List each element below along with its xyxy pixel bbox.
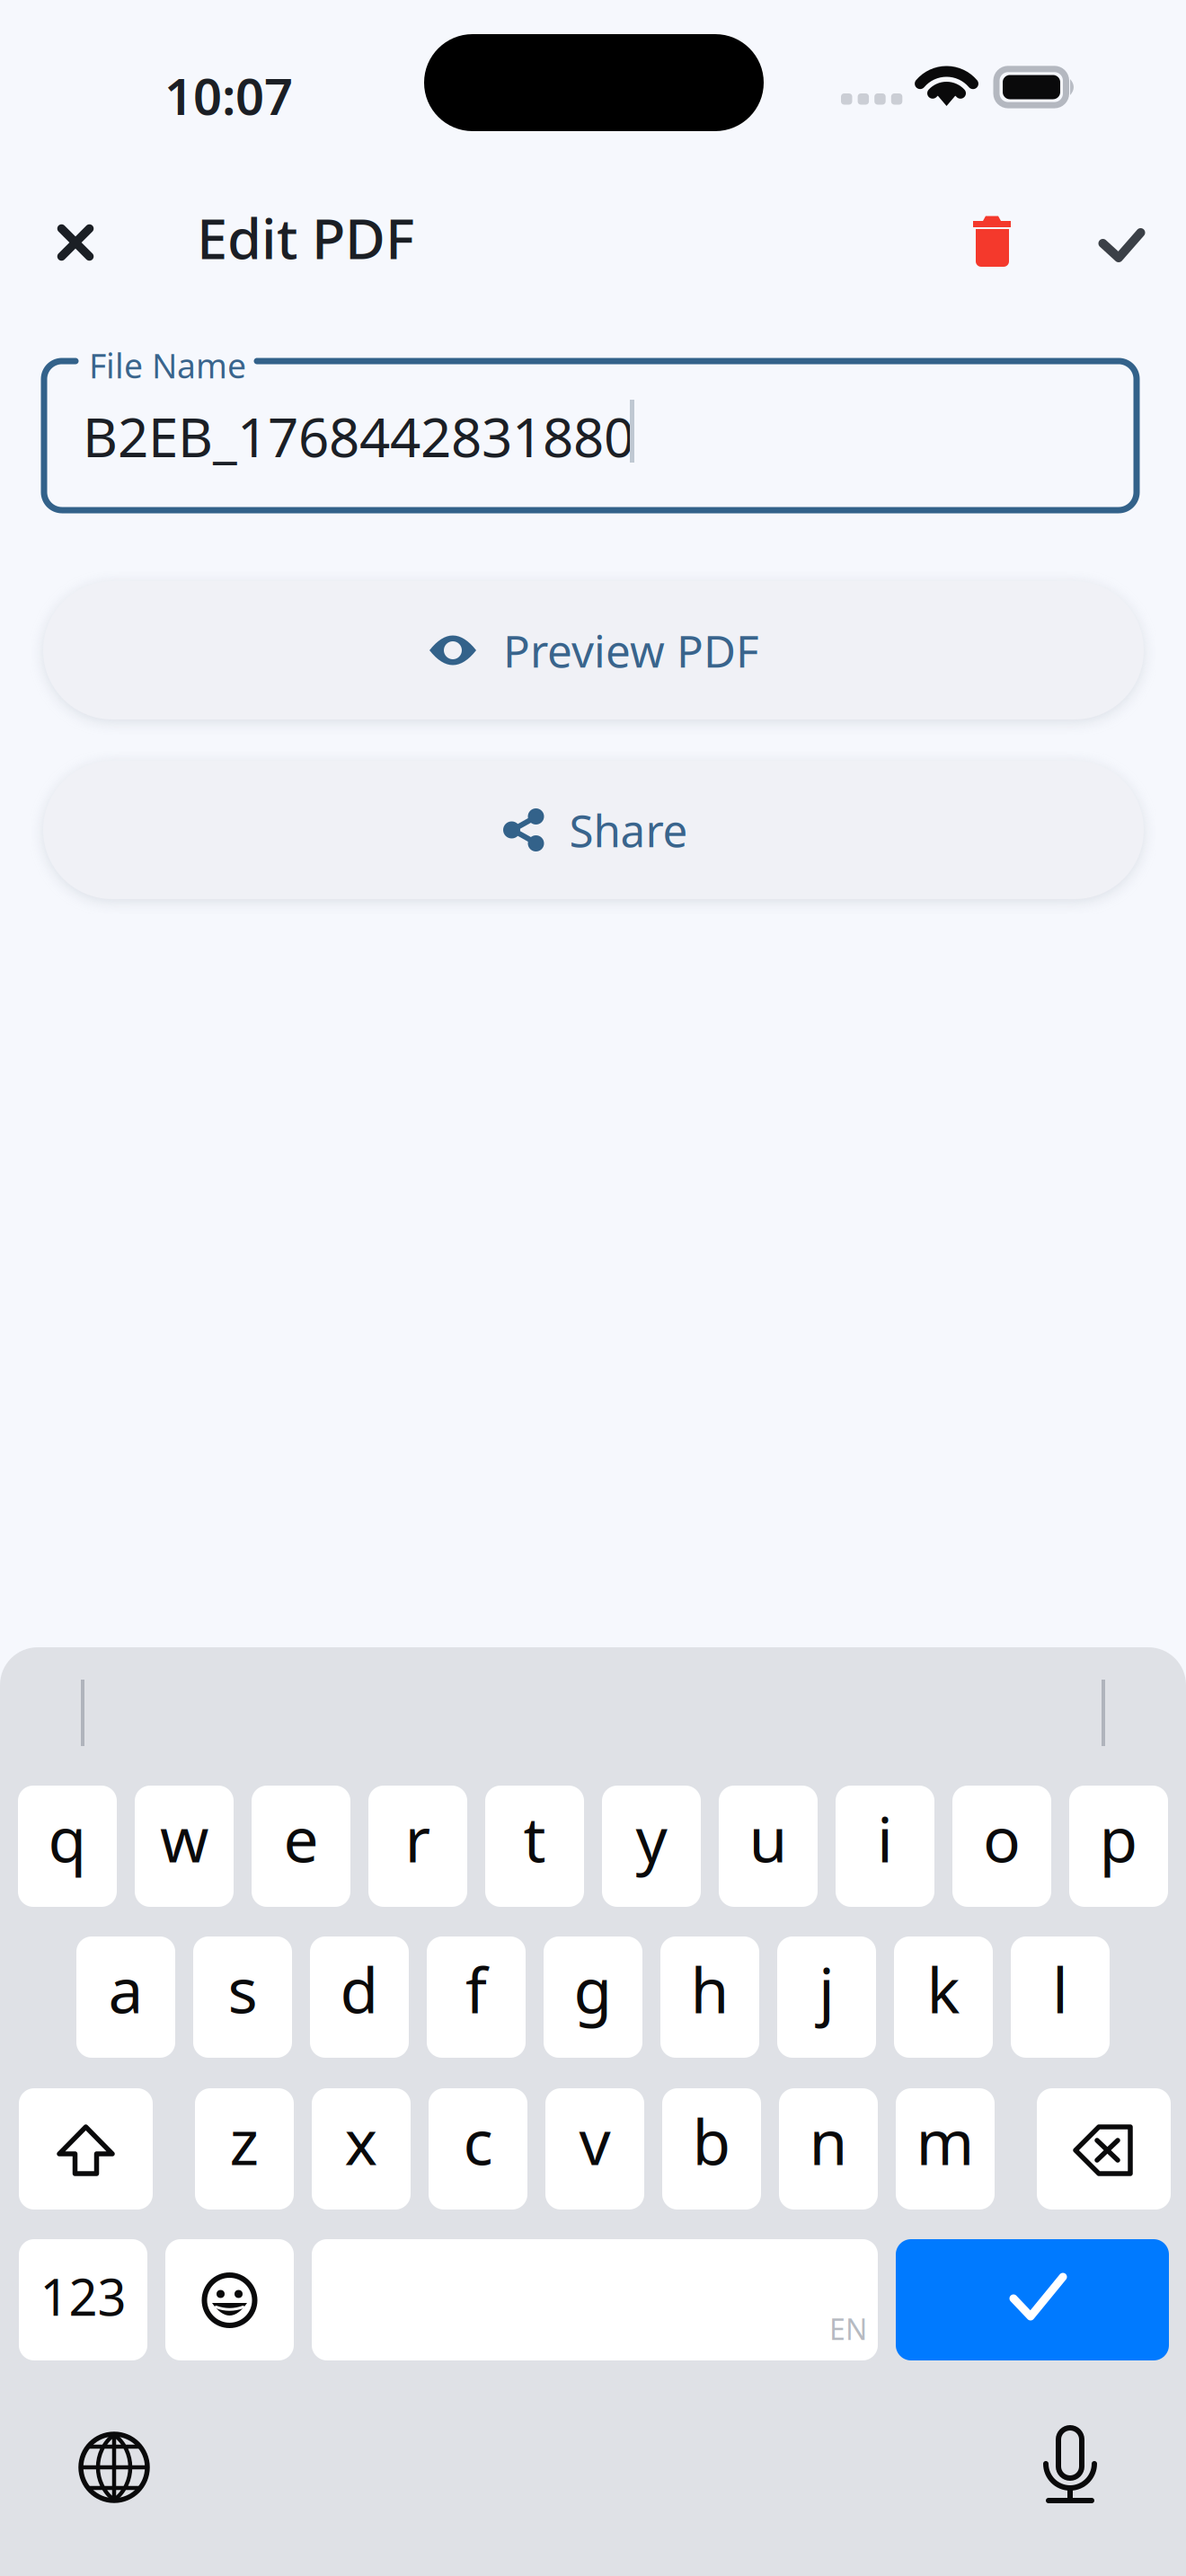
staticText: n — [809, 2100, 848, 2182]
staticText: k — [927, 1948, 960, 2030]
staticText: z — [230, 2100, 259, 2182]
staticText: u — [749, 1797, 788, 1880]
button[interactable]: Shift — [19, 2088, 153, 2210]
button[interactable]: t — [485, 1786, 584, 1907]
button[interactable]: h — [660, 1936, 759, 2058]
button[interactable]: Emoji — [165, 2239, 294, 2360]
button[interactable]: Dictate — [1016, 2412, 1124, 2519]
button[interactable]: i — [836, 1786, 934, 1907]
staticText: r — [405, 1797, 431, 1880]
button[interactable]: Next keyboard — [60, 2413, 168, 2521]
staticText: 10:07 — [164, 62, 293, 129]
button[interactable]: space — [312, 2239, 878, 2360]
staticText: B2EB_1768442831880 — [83, 401, 634, 472]
staticText: b — [692, 2100, 731, 2182]
staticText: d — [340, 1948, 379, 2030]
button[interactable]: z — [195, 2088, 294, 2210]
button[interactable]: x — [312, 2088, 411, 2210]
button[interactable]: Return — [896, 2239, 1169, 2360]
staticText: Preview PDF — [503, 621, 759, 680]
button[interactable]: v — [545, 2088, 644, 2210]
button[interactable]: Delete — [954, 162, 1066, 273]
button[interactable]: e — [252, 1786, 350, 1907]
button[interactable]: b — [662, 2088, 761, 2210]
button[interactable]: c — [429, 2088, 527, 2210]
button[interactable]: Done — [1073, 177, 1184, 288]
staticText: x — [345, 2100, 378, 2182]
staticText: t — [523, 1797, 546, 1880]
staticText: g — [574, 1948, 612, 2030]
button[interactable]: Share — [43, 761, 1144, 899]
staticText: v — [579, 2100, 611, 2182]
button[interactable]: y — [602, 1786, 701, 1907]
button[interactable]: d — [310, 1936, 409, 2058]
staticText: Edit PDF — [197, 201, 414, 274]
staticText: c — [463, 2100, 493, 2182]
button[interactable]: File Name — [40, 356, 1146, 535]
staticText: f — [465, 1948, 487, 2030]
button[interactable]: j — [777, 1936, 876, 2058]
button[interactable]: Preview PDF — [43, 581, 1144, 719]
button[interactable]: Close — [20, 181, 131, 293]
staticText: a — [108, 1948, 143, 2030]
button[interactable]: a — [76, 1936, 175, 2058]
staticText: q — [48, 1797, 87, 1880]
staticText: y — [636, 1797, 667, 1880]
staticText: m — [916, 2100, 974, 2182]
staticText: Share — [569, 800, 688, 859]
staticText: p — [1099, 1797, 1138, 1880]
button[interactable]: n — [779, 2088, 878, 2210]
staticText: File Name — [89, 343, 246, 388]
button[interactable]: Delete — [1037, 2088, 1171, 2210]
staticText: e — [283, 1797, 319, 1880]
staticText: EN — [829, 2310, 867, 2348]
staticText: 123 — [40, 2263, 126, 2330]
staticText: i — [877, 1797, 893, 1880]
staticText: s — [228, 1948, 257, 2030]
button[interactable]: 123 — [19, 2239, 147, 2360]
staticText: j — [819, 1948, 835, 2030]
button[interactable]: r — [368, 1786, 467, 1907]
staticText: o — [983, 1797, 1021, 1880]
button[interactable]: f — [427, 1936, 526, 2058]
button[interactable]: m — [896, 2088, 995, 2210]
staticText: w — [160, 1797, 208, 1880]
staticText: l — [1052, 1948, 1068, 2030]
button[interactable]: u — [719, 1786, 818, 1907]
button[interactable]: p — [1069, 1786, 1168, 1907]
button[interactable]: w — [135, 1786, 234, 1907]
button[interactable]: o — [952, 1786, 1051, 1907]
button[interactable]: k — [894, 1936, 993, 2058]
button[interactable]: l — [1011, 1936, 1110, 2058]
staticText: h — [690, 1948, 729, 2030]
button[interactable]: q — [18, 1786, 117, 1907]
button[interactable]: g — [544, 1936, 642, 2058]
button[interactable]: s — [193, 1936, 292, 2058]
